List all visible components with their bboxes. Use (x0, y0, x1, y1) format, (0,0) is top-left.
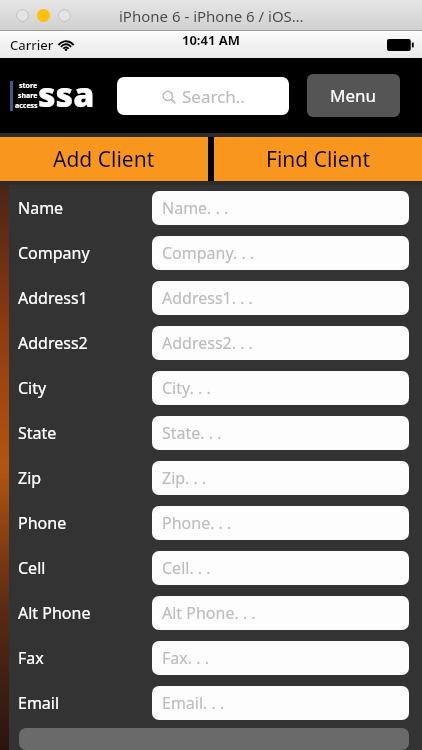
button[interactable]: Phone (9, 500, 422, 545)
staticText: Name. . . (162, 197, 229, 219)
staticText: State. . . (162, 422, 222, 444)
staticText: Company (18, 242, 152, 264)
staticText: access (15, 101, 38, 111)
staticText: State (18, 422, 152, 444)
staticText: 10:41 AM (182, 31, 241, 49)
button[interactable] (58, 9, 71, 22)
button[interactable]: Find Client (214, 137, 422, 181)
button[interactable] (16, 9, 29, 22)
staticText: Zip (18, 467, 152, 489)
staticText: iPhone 6 - iPhone 6 / iOS… (119, 6, 304, 26)
staticText: Fax (18, 647, 152, 669)
staticText: Alt Phone (18, 602, 152, 624)
button[interactable]: State (9, 410, 422, 455)
button[interactable]: Menu (307, 74, 400, 117)
button[interactable]: Address1 (9, 275, 422, 320)
button[interactable]: Search.. (117, 77, 289, 115)
staticText: Carrier (10, 36, 54, 54)
button[interactable]: Zip (9, 455, 422, 500)
button[interactable]: Address2 (9, 320, 422, 365)
button[interactable] (19, 728, 409, 750)
button[interactable] (37, 9, 50, 22)
staticText: Search.. (182, 85, 245, 108)
staticText: Zip. . . (162, 467, 207, 489)
staticText: Add Client (53, 145, 155, 174)
staticText: Menu (330, 84, 377, 107)
staticText: Address1 (18, 287, 152, 309)
button[interactable]: Cell (9, 545, 422, 590)
staticText: Find Client (266, 145, 371, 174)
staticText: Name (18, 197, 152, 219)
staticText: Cell. . . (162, 557, 211, 579)
staticText: Address2 (18, 332, 152, 354)
staticText: Address1. . . (162, 287, 253, 309)
button[interactable]: Alt Phone (9, 590, 422, 635)
staticText: Phone. . . (162, 512, 232, 534)
button[interactable]: Name (9, 185, 422, 230)
staticText: ssa (38, 71, 95, 117)
staticText: Email (18, 692, 152, 714)
button[interactable]: Fax (9, 635, 422, 680)
staticText: Phone (18, 512, 152, 534)
staticText: Email. . . (162, 692, 225, 714)
button[interactable]: Company (9, 230, 422, 275)
staticText: Address2. . . (162, 332, 253, 354)
staticText: City (18, 377, 152, 399)
staticText: Alt Phone. . . (162, 602, 256, 624)
button[interactable]: Email (9, 680, 422, 725)
staticText: City. . . (162, 377, 211, 399)
staticText: Fax. . . (162, 647, 209, 669)
staticText: Cell (18, 557, 152, 579)
staticText: Company. . . (162, 242, 255, 264)
staticText: share (18, 91, 38, 101)
button[interactable]: City (9, 365, 422, 410)
staticText: store (19, 81, 38, 91)
button[interactable]: Add Client (0, 137, 208, 181)
